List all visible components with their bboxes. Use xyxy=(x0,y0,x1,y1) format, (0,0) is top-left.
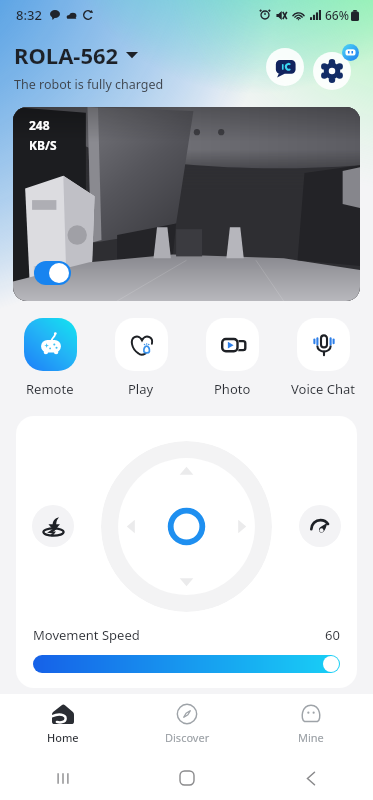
button[interactable]: Back xyxy=(249,756,373,800)
staticText: Play xyxy=(128,380,154,398)
button[interactable]: Movement speed slider xyxy=(33,655,340,673)
button[interactable]: Play xyxy=(97,318,185,398)
staticText: 8:32 xyxy=(16,6,42,24)
staticText: Remote xyxy=(26,380,74,398)
staticText: Movement Speed xyxy=(33,626,140,644)
staticText: Home xyxy=(47,730,79,745)
button[interactable]: Camera preview xyxy=(13,107,360,301)
staticText: The robot is fully charged xyxy=(14,76,164,93)
staticText: Discover xyxy=(165,730,210,745)
button[interactable]: ROLA-562 xyxy=(14,40,138,70)
button[interactable]: Settings xyxy=(313,52,351,90)
button[interactable]: Discover xyxy=(125,694,249,756)
staticText: 248 xyxy=(29,117,50,133)
button[interactable]: Mine xyxy=(249,694,373,756)
staticText: ROLA-562 xyxy=(14,40,119,70)
button[interactable]: Power toggle xyxy=(34,261,71,285)
staticText: KB/S xyxy=(29,137,57,153)
staticText: 66% xyxy=(325,7,349,23)
staticText: Voice Chat xyxy=(291,380,355,398)
button[interactable]: Return to dock xyxy=(32,505,74,547)
button[interactable]: Voice Chat xyxy=(279,318,367,398)
button[interactable]: Home xyxy=(125,756,249,800)
button[interactable]: Recents xyxy=(0,756,125,800)
button[interactable]: Messages xyxy=(266,48,304,86)
button[interactable]: Speed mode xyxy=(299,505,341,547)
button[interactable]: Direction pad xyxy=(101,441,272,612)
staticText: 60 xyxy=(325,626,340,644)
button[interactable]: Home xyxy=(0,694,125,756)
staticText: Photo xyxy=(214,380,251,398)
button[interactable]: Remote xyxy=(6,318,94,398)
button[interactable]: Photo xyxy=(188,318,276,398)
staticText: Mine xyxy=(298,730,324,745)
